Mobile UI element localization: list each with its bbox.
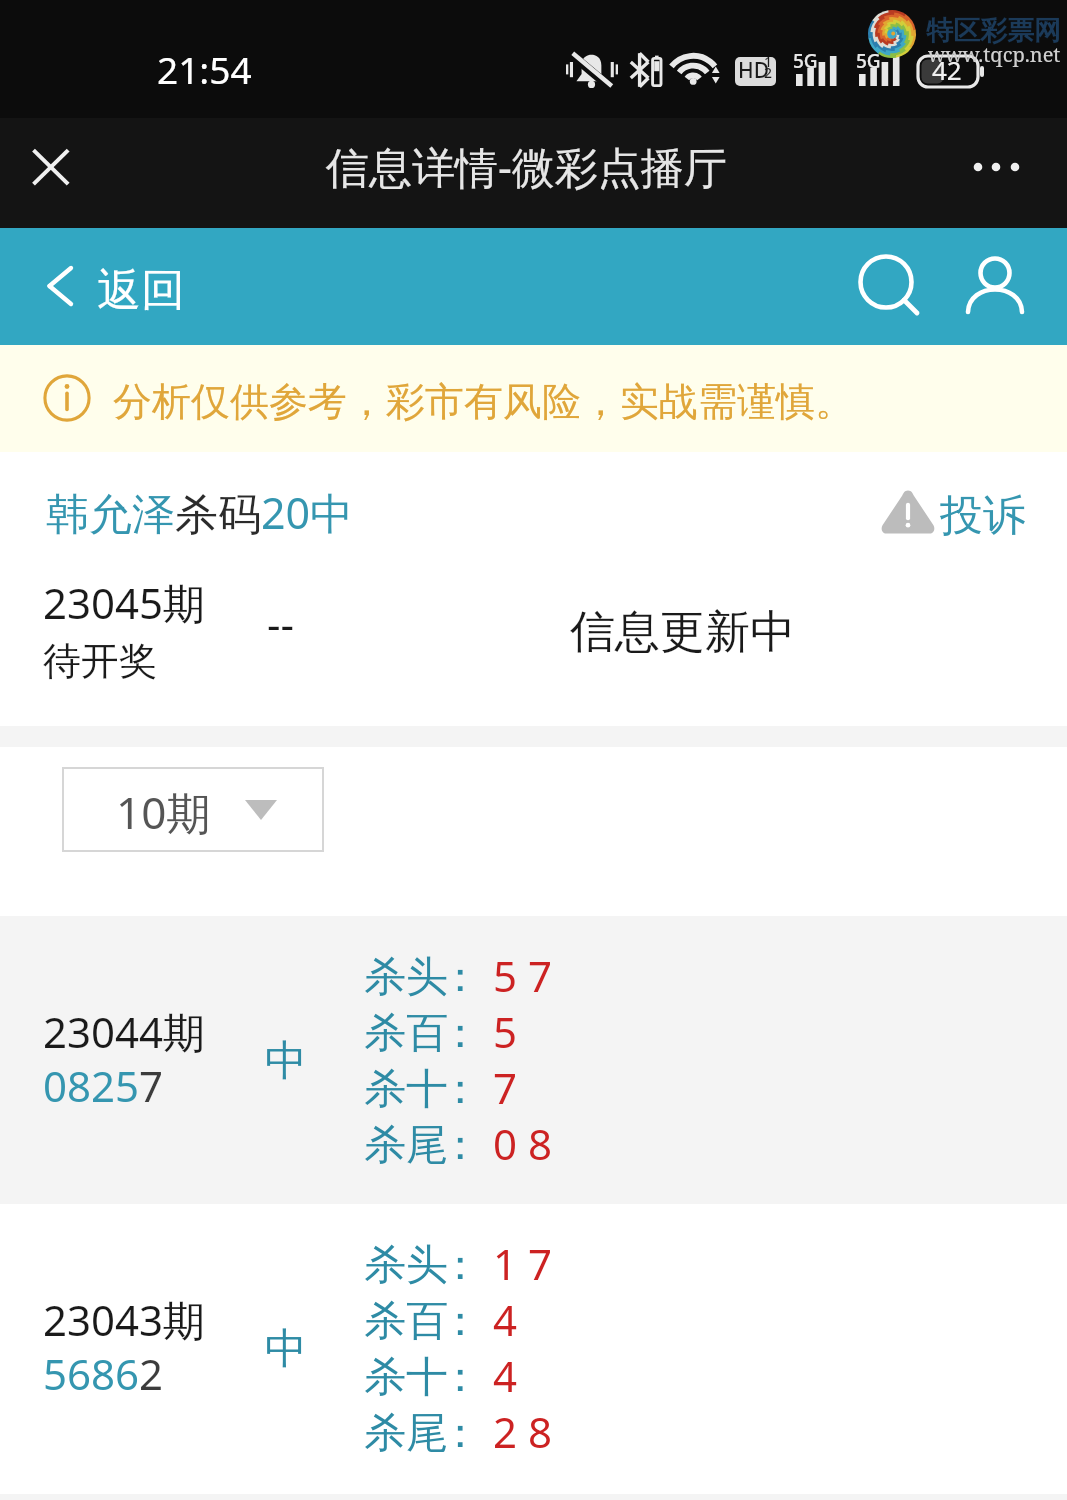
staticText: ： xyxy=(439,1063,481,1116)
staticText: 21:54 xyxy=(157,44,252,94)
staticText: 杀尾 xyxy=(364,1407,448,1460)
staticText: 杀尾 xyxy=(364,1119,448,1172)
staticText: 5G xyxy=(793,48,818,74)
staticText: 5 7 xyxy=(493,947,552,1004)
staticText: ： xyxy=(439,1295,481,1348)
button[interactable]: Search xyxy=(850,248,930,328)
staticText: 08257 xyxy=(43,1057,164,1114)
staticText: 23044期 xyxy=(43,1003,206,1060)
staticText: 0 8 xyxy=(493,1115,552,1172)
staticText: 特区彩票网 xyxy=(926,14,1061,48)
staticText: 5 xyxy=(493,1003,518,1060)
staticText: 杀百 xyxy=(364,1007,448,1060)
staticText: -- xyxy=(267,595,295,652)
staticText: 杀十 xyxy=(364,1351,448,1404)
staticText: 信息详情-微彩点播厅 xyxy=(326,137,727,196)
staticText: 23043期 xyxy=(43,1291,206,1348)
staticText: 7 xyxy=(493,1059,518,1116)
staticText: 待开奖 xyxy=(43,637,157,685)
staticText: 韩允泽杀码20中 xyxy=(46,483,354,542)
button[interactable]: 投诉 xyxy=(880,484,1026,540)
staticText: ： xyxy=(439,1007,481,1060)
staticText: 2 8 xyxy=(493,1403,552,1460)
staticText: 10期 xyxy=(116,782,211,842)
staticText: 中 xyxy=(265,1323,307,1376)
button[interactable]: 返回 xyxy=(26,236,206,336)
button[interactable]: Close xyxy=(18,135,84,201)
staticText: 返回 xyxy=(97,263,185,318)
staticText: 杀百 xyxy=(364,1295,448,1348)
staticText: 4 xyxy=(493,1291,518,1348)
staticText: www.tqcp.net xyxy=(928,41,1061,68)
staticText: 5G xyxy=(856,48,881,74)
staticText: 23045期 xyxy=(43,574,206,631)
button[interactable]: More options xyxy=(955,143,1035,203)
staticText: 2 xyxy=(764,63,773,82)
staticText: ： xyxy=(439,951,481,1004)
staticText: 投诉 xyxy=(940,489,1026,543)
staticText: ： xyxy=(439,1239,481,1292)
staticText: 56862 xyxy=(43,1345,164,1402)
staticText: 中 xyxy=(265,1035,307,1088)
staticText: HD xyxy=(738,57,770,85)
button[interactable]: Account xyxy=(958,248,1038,328)
staticText: 杀头 xyxy=(364,1239,448,1292)
staticText: ： xyxy=(439,1407,481,1460)
staticText: 信息更新中 xyxy=(570,604,795,661)
staticText: 4 xyxy=(493,1347,518,1404)
staticText: 杀十 xyxy=(364,1063,448,1116)
button[interactable]: 10期 xyxy=(62,767,324,852)
button[interactable]: 23044期 xyxy=(0,916,1067,1205)
staticText: 分析仅供参考，彩市有风险，实战需谨慎。 xyxy=(113,377,854,426)
staticText: ： xyxy=(439,1119,481,1172)
button[interactable]: 23043期 xyxy=(0,1204,1067,1493)
staticText: 1 7 xyxy=(493,1235,552,1292)
staticText: ： xyxy=(439,1351,481,1404)
staticText: 杀头 xyxy=(364,951,448,1004)
staticText: 42 xyxy=(932,52,962,87)
staticText: 1 xyxy=(764,57,773,71)
